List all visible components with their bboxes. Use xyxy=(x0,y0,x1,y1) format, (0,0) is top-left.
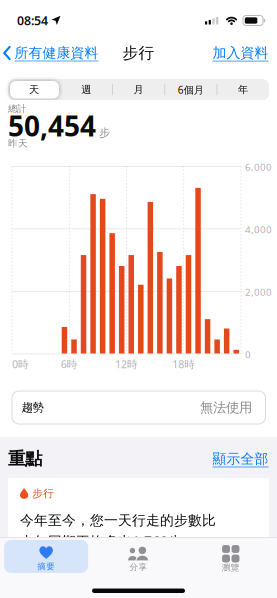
staticText: 趨勢 xyxy=(21,400,43,415)
staticText: 18時 xyxy=(172,357,195,371)
staticText: 天 xyxy=(29,83,39,96)
button[interactable]: 6個月 xyxy=(165,79,217,100)
button[interactable]: 步行 xyxy=(8,478,269,598)
staticText: 0時 xyxy=(12,357,29,371)
staticText: 步行 xyxy=(32,487,54,500)
button[interactable]: 摘要 xyxy=(0,539,92,579)
staticText: 步 xyxy=(99,126,110,140)
staticText: 無法使用 xyxy=(200,399,252,416)
button[interactable]: 週 xyxy=(60,79,112,100)
staticText: 所有健康資料 xyxy=(14,45,98,61)
button[interactable]: 年 xyxy=(217,79,269,100)
staticText: 總計 xyxy=(8,103,26,114)
staticText: 今年至今，您一天行走的步數比 xyxy=(20,512,216,529)
staticText: 週 xyxy=(81,83,91,96)
staticText: 年 xyxy=(238,83,248,96)
button[interactable]: 瀏覽 xyxy=(185,539,277,579)
staticText: 步行 xyxy=(122,43,154,63)
staticText: 摘要 xyxy=(37,561,55,572)
staticText: 昨天 xyxy=(8,137,28,149)
staticText: 4,000 xyxy=(245,223,272,236)
staticText: 重點 xyxy=(8,448,42,469)
button[interactable]: 分享 xyxy=(92,539,185,579)
button[interactable]: 顯示全部 xyxy=(0,447,268,471)
staticText: 0 xyxy=(245,348,251,361)
staticText: 12時 xyxy=(115,357,138,371)
staticText: 08:54 xyxy=(17,12,48,29)
staticText: 加入資料 xyxy=(212,44,268,61)
staticText: 2,000 xyxy=(245,285,272,298)
staticText: 6時 xyxy=(61,357,78,371)
staticText: 月 xyxy=(133,83,143,96)
button[interactable]: 趨勢 xyxy=(12,391,265,424)
staticText: 分享 xyxy=(129,562,147,572)
staticText: 6,000 xyxy=(245,160,272,173)
staticText: 6個月 xyxy=(178,83,204,96)
button[interactable]: 加入資料 xyxy=(0,41,268,65)
staticText: 顯示全部 xyxy=(212,451,268,467)
button[interactable]: 月 xyxy=(112,79,165,100)
staticText: 去年同期平均多出1,768步。 xyxy=(20,532,196,550)
staticText: 瀏覽 xyxy=(222,562,240,573)
staticText: 50,454 xyxy=(8,107,96,144)
button[interactable]: 所有健康資料 xyxy=(3,41,98,65)
button[interactable]: 天 xyxy=(8,79,60,100)
